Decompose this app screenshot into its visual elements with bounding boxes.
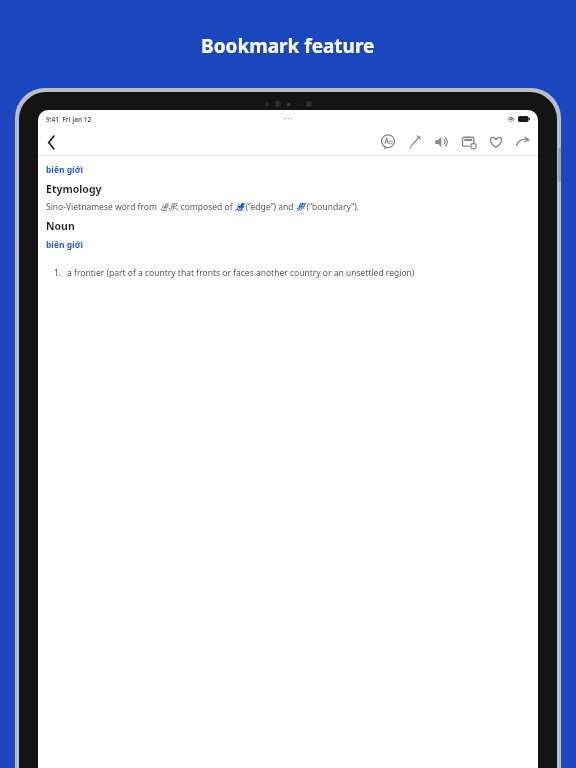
staticText: biên giới	[46, 239, 83, 251]
staticText: 1.	[54, 267, 62, 279]
button[interactable]: Pronounce	[430, 130, 454, 154]
button[interactable]: Bookmark	[484, 130, 508, 154]
button[interactable]: Edit	[403, 130, 427, 154]
staticText: Etymology	[46, 182, 102, 196]
staticText: 9:41 Fri Jan 12	[46, 115, 92, 124]
staticText: a frontier (part of a country that front…	[67, 267, 415, 279]
button[interactable]: Back	[38, 129, 64, 155]
staticText: Noun	[46, 219, 75, 233]
staticText: • • •	[284, 116, 293, 123]
staticText: biên giới	[46, 164, 83, 176]
staticText: Bookmark feature	[201, 33, 375, 59]
staticText: Sino-Vietnamese word from 邊界, composed o…	[46, 201, 360, 213]
button[interactable]: Flashcard	[457, 130, 481, 154]
button[interactable]: Text size	[376, 130, 400, 154]
button[interactable]: Share	[511, 130, 535, 154]
